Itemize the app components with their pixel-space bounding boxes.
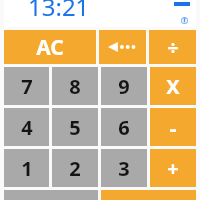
staticText: 8 <box>69 73 81 100</box>
staticText: 4 <box>21 114 33 141</box>
button[interactable]: 6 <box>101 108 147 146</box>
button[interactable]: 7 <box>4 67 49 105</box>
staticText: 1 <box>21 155 33 182</box>
button[interactable]: Minus <box>150 108 196 146</box>
button[interactable]: 3 <box>101 149 147 187</box>
button[interactable]: 2 <box>52 149 98 187</box>
staticText: 5 <box>69 114 81 141</box>
button[interactable]: 9 <box>101 67 147 105</box>
staticText: 2 <box>69 155 81 182</box>
button[interactable]: Backspace <box>99 30 146 64</box>
button[interactable]: AC <box>4 30 96 64</box>
button[interactable]: Divide <box>149 30 196 64</box>
button[interactable]: 5 <box>52 108 98 146</box>
button[interactable]: 8 <box>52 67 98 105</box>
staticText: X <box>166 73 180 100</box>
staticText: 9 <box>118 73 130 100</box>
button[interactable]: 1 <box>4 149 49 187</box>
staticText: - <box>169 112 177 142</box>
staticText: ÷ <box>167 34 179 61</box>
staticText: + <box>167 155 179 182</box>
staticText: 3 <box>118 155 130 182</box>
button[interactable]: Info <box>181 17 188 24</box>
button[interactable]: Plus <box>150 149 196 187</box>
button[interactable]: 4 <box>4 108 49 146</box>
staticText: 7 <box>21 73 33 100</box>
staticText: 13:21 <box>28 0 90 17</box>
staticText: AC <box>36 33 64 62</box>
staticText: 6 <box>118 114 130 141</box>
button[interactable]: Multiply <box>150 67 196 105</box>
